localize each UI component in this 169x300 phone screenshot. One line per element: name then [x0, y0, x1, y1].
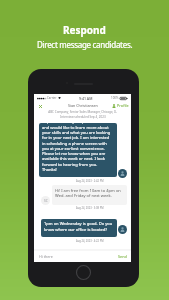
staticText: 9:41 AM	[79, 96, 93, 101]
staticText: 100%	[111, 96, 119, 100]
staticText: Sian Christiansen	[68, 103, 98, 108]
staticText: Send	[118, 254, 127, 259]
staticText: and would like to learn more about	[42, 125, 109, 131]
staticText: in scheduling a phone screen with	[42, 141, 107, 147]
staticText: available this week or next. I look	[42, 156, 105, 162]
staticText: Carrier	[47, 96, 57, 100]
button[interactable]: Close conversation	[36, 102, 45, 111]
button[interactable]	[41, 219, 117, 237]
button[interactable]: Send	[118, 254, 127, 259]
button[interactable]	[52, 185, 127, 205]
staticText: impressed with your profile	[42, 123, 95, 125]
button[interactable]	[39, 123, 117, 177]
staticText: Respond	[63, 23, 106, 37]
button[interactable]: Profile	[112, 103, 129, 108]
staticText: your skills and what you are looking	[42, 130, 111, 136]
other: Sender avatar	[118, 225, 127, 234]
staticText: Wed. and Friday of next week.	[55, 193, 112, 199]
staticText: forward to hearing from you.	[42, 162, 98, 168]
staticText: Hi there	[39, 254, 53, 259]
staticText: SC	[44, 199, 48, 203]
staticText: you at your earliest convenience.	[42, 146, 105, 152]
button[interactable]: Hi there	[39, 254, 53, 259]
staticText: Aug 24, 2023 · 2:42 PM	[76, 179, 104, 183]
staticText: for in your next job. I am interested	[42, 135, 110, 141]
staticText: Please let me know when you are	[42, 151, 106, 157]
staticText: Aug 24, 2023 · 3:08 PM	[76, 206, 104, 210]
staticText: Aug 24, 2023 · 4:22 PM	[76, 239, 104, 243]
staticText: ABC Company, Senior Sales Manager, Chica…	[48, 110, 117, 114]
staticText: Profile	[117, 103, 129, 108]
staticText: know where our office is located?	[44, 227, 108, 233]
staticText: Hi! I am free from 10am to 4pm on	[55, 188, 121, 194]
other: Sender avatar	[118, 169, 127, 178]
staticText: 1pm on Wednesday is good. Do you	[44, 221, 113, 227]
staticText: Thanks!	[42, 167, 57, 173]
staticText: Direct message candidates.	[37, 39, 133, 50]
staticText: Interview scheduled Sep 4, 2023	[60, 115, 106, 119]
